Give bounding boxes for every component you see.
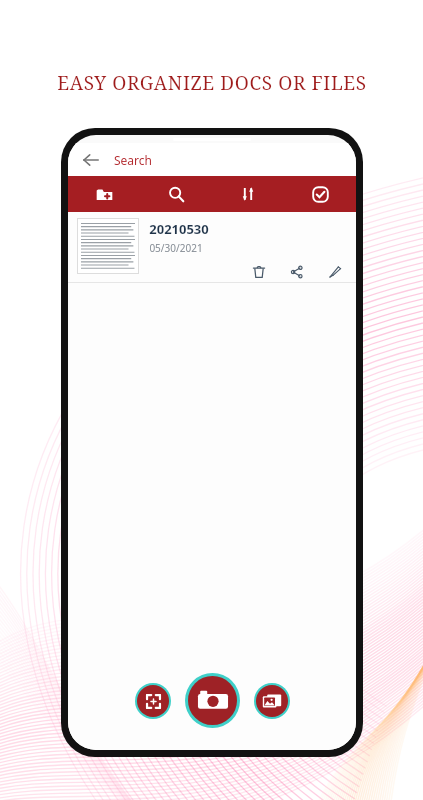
button[interactable]: Delete: [248, 262, 270, 282]
button[interactable]: Select all: [284, 176, 356, 212]
button[interactable]: Share: [286, 262, 308, 282]
staticText: Search: [114, 152, 152, 168]
button[interactable]: Gallery: [256, 685, 288, 717]
button[interactable]: Crop: [137, 685, 169, 717]
staticText: EASY ORGANIZE DOCS OR FILES: [57, 70, 367, 96]
staticText: 20210530: [149, 220, 209, 238]
button[interactable]: Back: [80, 149, 102, 171]
button[interactable]: Take photo: [188, 676, 237, 725]
button[interactable]: Back: [68, 143, 356, 176]
button[interactable]: Sort: [212, 176, 284, 212]
button[interactable]: 20210530: [68, 212, 356, 282]
button[interactable]: Search: [140, 176, 212, 212]
staticText: 05/30/2021: [149, 241, 203, 255]
button[interactable]: New folder: [68, 176, 140, 212]
button[interactable]: Edit: [324, 262, 346, 282]
